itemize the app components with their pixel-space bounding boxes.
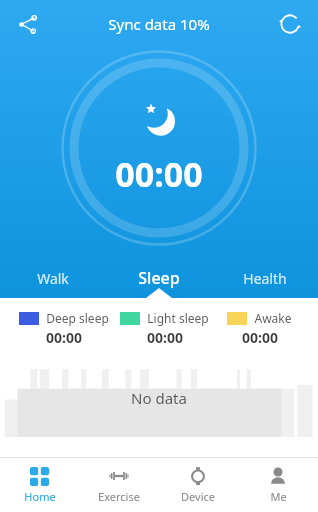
staticText: No data bbox=[131, 388, 187, 408]
staticText: Walk bbox=[37, 269, 69, 288]
button[interactable]: Awake bbox=[215, 310, 304, 347]
staticText: Health bbox=[243, 269, 287, 288]
staticText: Sleep bbox=[138, 267, 180, 289]
button[interactable]: Refresh bbox=[268, 2, 312, 46]
button[interactable]: Sleep bbox=[106, 258, 212, 298]
button[interactable]: Me bbox=[238, 458, 318, 512]
button[interactable]: Share bbox=[6, 2, 50, 46]
staticText: Me bbox=[270, 489, 287, 504]
button[interactable]: Home bbox=[0, 458, 79, 512]
button[interactable]: Exercise bbox=[79, 458, 158, 512]
staticText: Deep sleep bbox=[46, 310, 109, 326]
staticText: 00:00 bbox=[46, 328, 82, 347]
button[interactable]: Sleep summary bbox=[61, 50, 257, 246]
staticText: 00:00 bbox=[115, 151, 203, 197]
staticText: 00:00 bbox=[242, 328, 278, 347]
button[interactable]: Walk bbox=[0, 258, 106, 298]
staticText: Exercise bbox=[98, 489, 140, 504]
button[interactable]: No data bbox=[0, 359, 318, 437]
staticText: Device bbox=[181, 489, 215, 504]
staticText: Light sleep bbox=[147, 310, 209, 326]
button[interactable]: Deep sleep bbox=[14, 310, 114, 347]
staticText: 00:00 bbox=[147, 328, 183, 347]
button[interactable]: Health bbox=[212, 258, 318, 298]
button[interactable]: Device bbox=[158, 458, 238, 512]
staticText: Sync data 10% bbox=[108, 14, 210, 34]
staticText: Home bbox=[24, 489, 56, 504]
button[interactable]: Light sleep bbox=[114, 310, 215, 347]
staticText: Awake bbox=[254, 310, 292, 326]
